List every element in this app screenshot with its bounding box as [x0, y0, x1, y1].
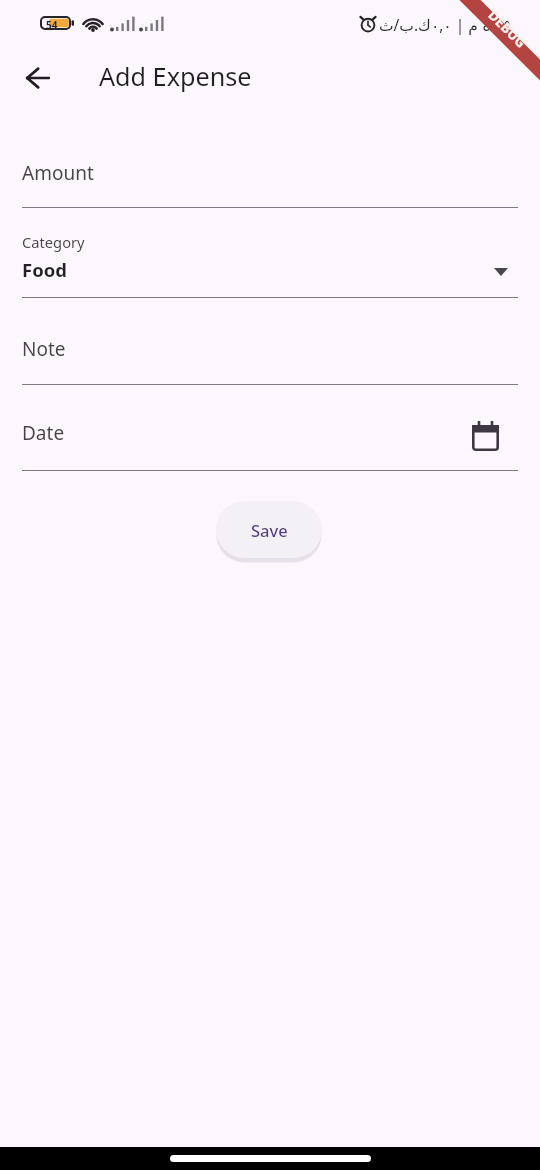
staticText: Date: [22, 420, 65, 446]
staticText: 54: [46, 18, 58, 32]
staticText: Food: [22, 257, 67, 282]
staticText: ٤:٥٥ م | ٠,٠ك.ب/ث: [379, 14, 512, 35]
staticText: DEBUG: [484, 6, 530, 52]
button[interactable]: Select category: [484, 255, 518, 289]
staticText: Note: [22, 336, 66, 362]
button[interactable]: Amount: [0, 146, 540, 207]
button[interactable]: Note: [0, 322, 540, 384]
button[interactable]: Category, Food: [0, 226, 540, 298]
staticText: Add Expense: [99, 59, 252, 93]
staticText: Amount: [22, 160, 94, 186]
staticText: Category: [22, 232, 85, 252]
button[interactable]: Date: [0, 408, 540, 470]
staticText: Save: [251, 519, 288, 541]
button[interactable]: Save: [216, 501, 322, 558]
button[interactable]: Pick date: [468, 419, 502, 453]
button[interactable]: Back: [15, 55, 61, 101]
